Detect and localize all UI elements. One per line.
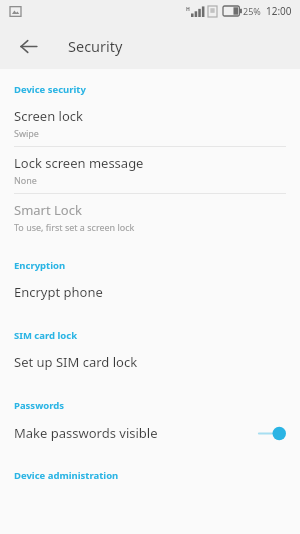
button[interactable]: Navigate up [9,27,47,65]
staticText: None [14,174,37,186]
staticText: Security [68,36,123,56]
staticText: Screen lock [14,107,83,125]
staticText: Device security [14,83,86,96]
staticText: 25% [243,5,261,17]
staticText: Set up SIM card lock [14,353,138,371]
staticText: SIM card lock [14,329,78,342]
staticText: Encryption [14,259,66,272]
button[interactable]: Set up SIM card lock [0,346,300,378]
button[interactable]: Smart Lock [0,194,300,240]
staticText: H [186,6,190,13]
button[interactable]: Lock screen message [0,147,300,193]
button[interactable]: Make passwords visible [0,416,300,450]
staticText: Smart Lock [14,201,82,219]
staticText: To use, first set a screen lock [14,221,135,233]
button[interactable]: Screen lock [0,100,300,146]
staticText: Passwords [14,399,65,412]
staticText: Lock screen message [14,154,144,172]
staticText: Make passwords visible [14,424,258,442]
button[interactable]: Encrypt phone [0,276,300,308]
staticText: 12:00 [266,4,292,18]
staticText: Encrypt phone [14,283,103,301]
staticText: Swipe [14,127,39,139]
staticText: Device administration [14,469,119,482]
